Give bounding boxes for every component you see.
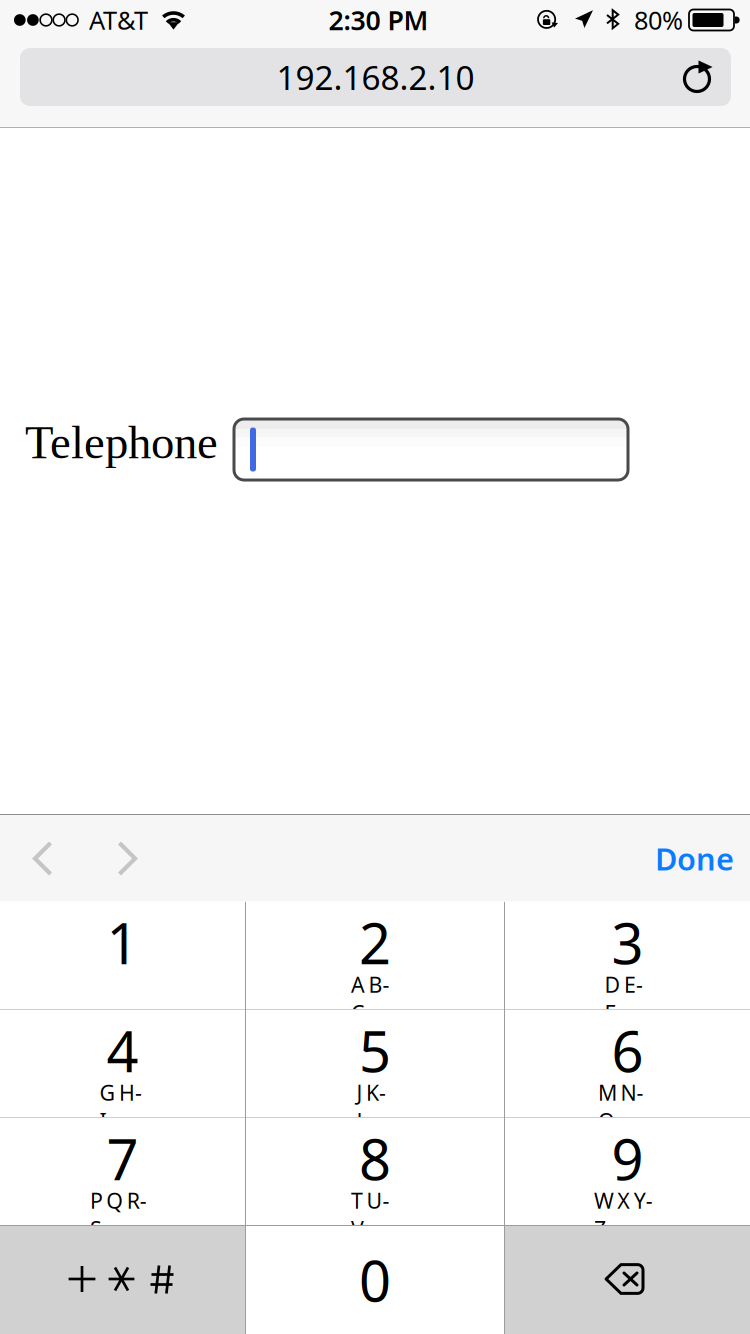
button[interactable]: Delete <box>505 1226 750 1334</box>
staticText: 6 <box>611 1013 643 1088</box>
button[interactable]: 7 <box>0 1117 245 1225</box>
button[interactable]: 4 <box>0 1009 245 1117</box>
staticText: PQRS <box>90 1186 155 1215</box>
button[interactable]: 8 <box>246 1117 504 1225</box>
staticText: AT&T <box>89 3 148 37</box>
button[interactable]: 0 <box>246 1226 504 1334</box>
staticText: WXYZ <box>594 1186 661 1215</box>
button[interactable]: 3 <box>505 901 750 1009</box>
staticText: 80% <box>634 3 683 37</box>
staticText: 3 <box>611 905 643 980</box>
staticText: DEF <box>605 970 650 999</box>
button[interactable]: Previous field <box>0 815 85 902</box>
staticText: JKL <box>357 1078 393 1107</box>
staticText: TUV <box>351 1186 399 1215</box>
staticText: 5 <box>359 1013 391 1088</box>
button[interactable]: Next field <box>85 815 170 902</box>
staticText: 2:30 PM <box>328 2 428 38</box>
staticText: 8 <box>359 1121 391 1196</box>
staticText: 2 <box>359 905 391 980</box>
staticText: 9 <box>611 1121 643 1196</box>
button[interactable]: Plus star pound <box>0 1226 245 1334</box>
button[interactable]: 1 <box>0 901 245 1009</box>
button[interactable]: Done <box>631 815 750 902</box>
button[interactable]: 6 <box>505 1009 750 1117</box>
button[interactable]: 9 <box>505 1117 750 1225</box>
staticText: MNO <box>598 1078 657 1107</box>
button[interactable]: Reload <box>665 48 731 106</box>
staticText: Telephone <box>25 417 218 468</box>
staticText: Done <box>655 838 734 879</box>
staticText: 1 <box>106 905 138 980</box>
staticText: 4 <box>106 1013 138 1088</box>
button[interactable]: 2 <box>246 901 504 1009</box>
staticText: GHI <box>100 1078 145 1107</box>
staticText: ABC <box>351 970 399 999</box>
staticText: 0 <box>359 1243 391 1317</box>
staticText: 192.168.2.10 <box>276 55 474 99</box>
staticText: 7 <box>106 1121 138 1196</box>
button[interactable]: 5 <box>246 1009 504 1117</box>
